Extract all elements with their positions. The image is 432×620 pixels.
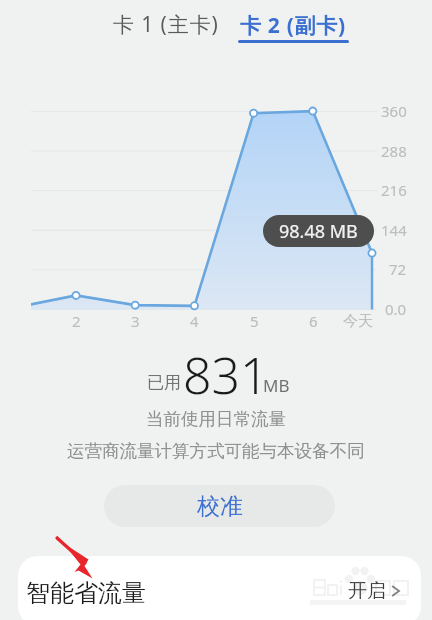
staticText: 开启	[348, 579, 386, 603]
staticText: 360	[381, 101, 407, 121]
button[interactable]: 开启	[348, 570, 402, 612]
staticText: 831	[183, 341, 269, 409]
button[interactable]: 校准	[104, 485, 335, 527]
staticText: 72	[389, 259, 407, 279]
staticText: 今天	[343, 312, 373, 331]
staticText: 98.48 MB	[279, 219, 358, 244]
staticText: 运营商流量计算方式可能与本设备不同	[67, 440, 365, 460]
staticText: 当前使用日常流量	[146, 408, 286, 428]
staticText: 6	[309, 311, 318, 331]
staticText: 3	[131, 311, 140, 331]
other: Annotation arrow	[0, 0, 432, 620]
staticText: 已用	[147, 372, 181, 393]
button[interactable]: 卡 2 (副卡)	[236, 6, 350, 44]
staticText: 216	[381, 180, 407, 200]
staticText: 144	[381, 220, 407, 240]
staticText: MB	[263, 374, 290, 397]
staticText: 4	[190, 311, 199, 331]
staticText: 5	[250, 311, 259, 331]
staticText: 288	[381, 141, 407, 161]
staticText: 校准	[197, 492, 243, 521]
button[interactable]: 卡 1 (主卡)	[106, 6, 226, 42]
staticText: 卡 2 (副卡)	[240, 11, 346, 40]
staticText: 智能省流量	[26, 578, 146, 608]
staticText: 卡 1 (主卡)	[113, 10, 219, 39]
staticText: 0.0	[385, 299, 407, 319]
staticText: 2	[72, 311, 81, 331]
